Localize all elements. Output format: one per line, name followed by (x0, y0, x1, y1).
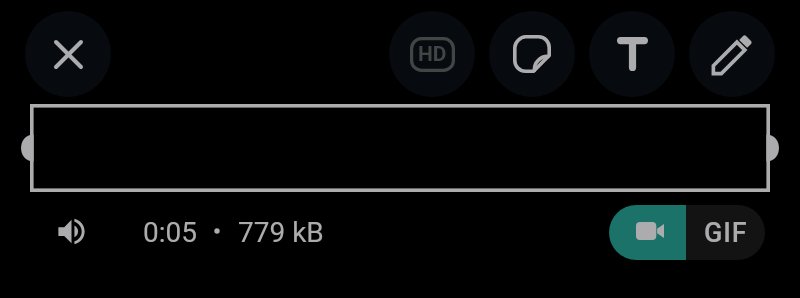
button[interactable]: Draw (689, 11, 775, 97)
staticText: 0:05 (143, 216, 197, 249)
staticText: GIF (704, 217, 748, 249)
button[interactable]: Video (609, 205, 686, 260)
staticText: 779 kB (238, 216, 324, 249)
button[interactable]: Add sticker (489, 11, 575, 97)
button[interactable]: GIF (686, 205, 765, 260)
staticText: HD (418, 42, 447, 67)
button[interactable]: Close (25, 11, 111, 97)
button[interactable]: Mute audio (36, 196, 106, 266)
button[interactable]: HD quality (389, 11, 475, 97)
button[interactable]: Add text (589, 11, 675, 97)
